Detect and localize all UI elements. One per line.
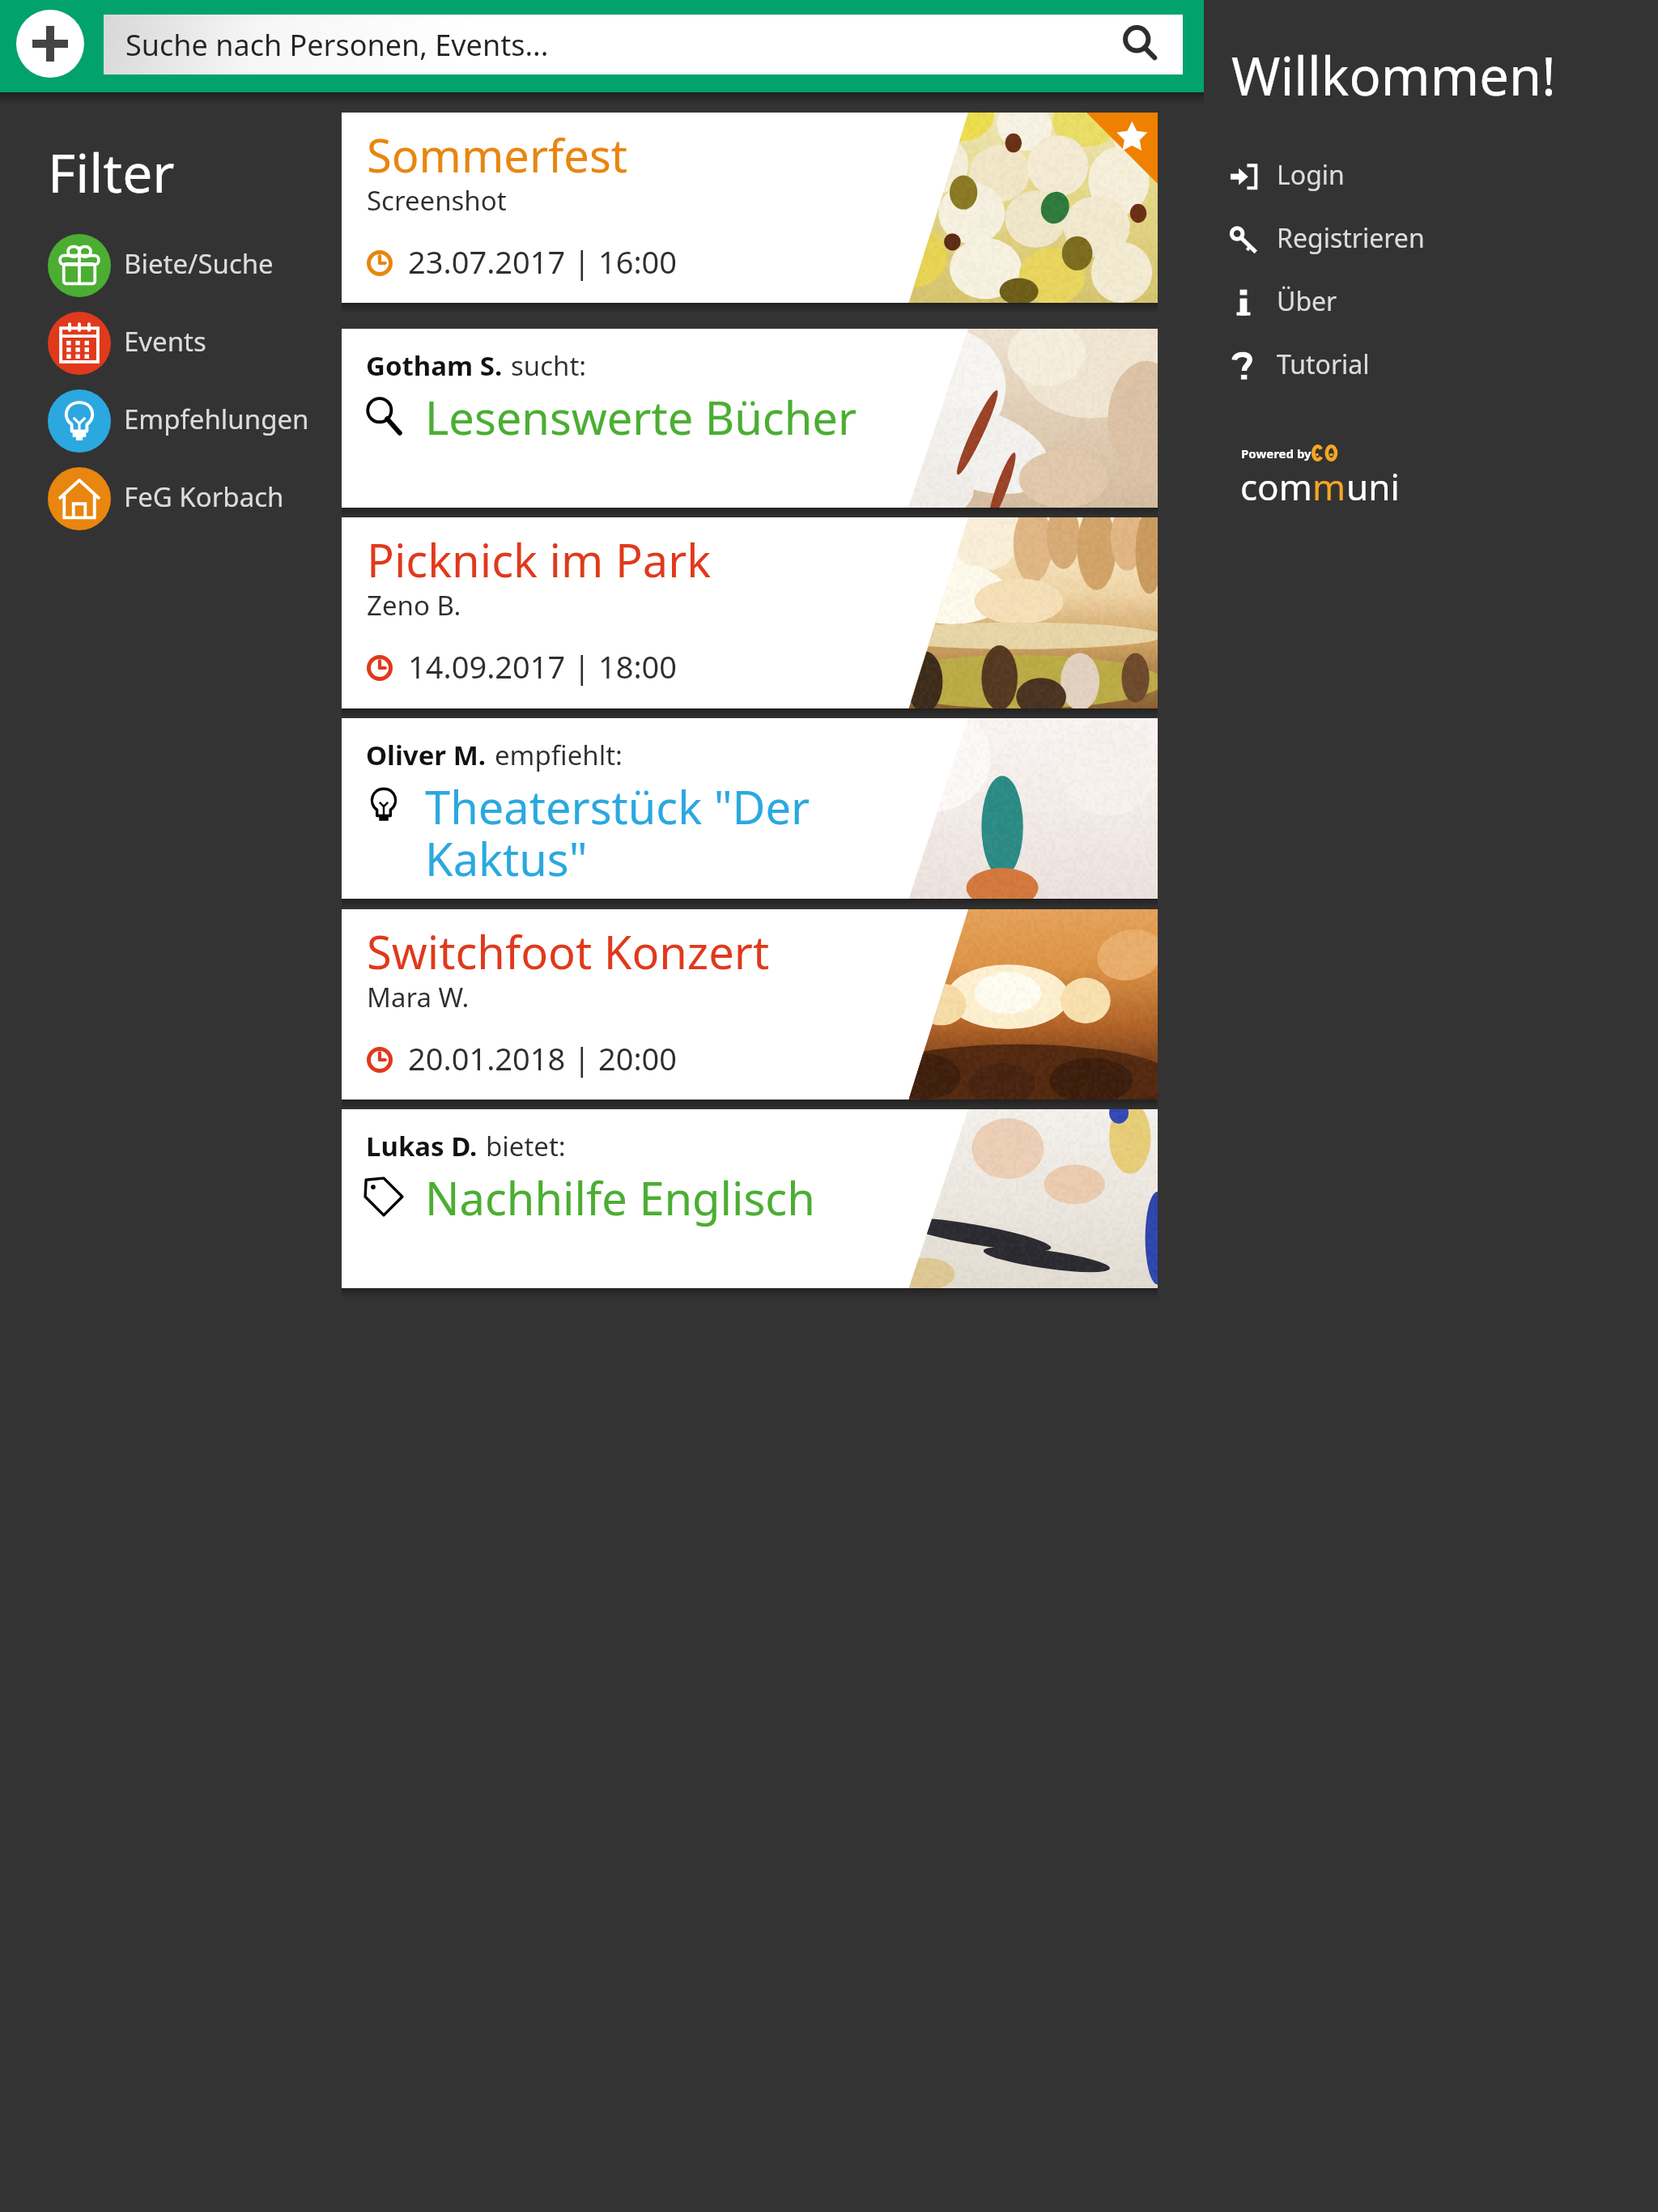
staticText: Gotham S. bbox=[366, 347, 503, 384]
button[interactable]: Gotham S. bbox=[342, 329, 1158, 508]
staticText: Suche nach Personen, Events... bbox=[125, 25, 549, 65]
staticText: 14.09.2017 | 18:00 bbox=[408, 645, 678, 687]
staticText: Filter bbox=[48, 135, 175, 208]
button[interactable]: Biete/Suche bbox=[48, 234, 339, 297]
staticText: com bbox=[1240, 462, 1312, 511]
staticText: Lesenswerte Bücher bbox=[425, 386, 857, 448]
staticText: uni bbox=[1346, 462, 1400, 511]
button[interactable]: Tutorial bbox=[1231, 343, 1554, 389]
button[interactable]: Neuen Beitrag erstellen bbox=[16, 10, 84, 78]
button[interactable]: Login bbox=[1231, 154, 1554, 199]
staticText: 23.07.2017 | 16:00 bbox=[408, 240, 678, 283]
staticText: Powered by bbox=[1241, 445, 1312, 462]
staticText: Screenshot bbox=[367, 182, 507, 219]
staticText: Zeno B. bbox=[367, 587, 461, 623]
button[interactable]: FeG Korbach bbox=[48, 467, 339, 530]
staticText: Picknick im Park bbox=[367, 529, 712, 590]
button[interactable]: Lukas D. bbox=[342, 1109, 1158, 1288]
staticText: m bbox=[1312, 462, 1346, 511]
button[interactable]: Registrieren bbox=[1231, 217, 1554, 262]
button[interactable]: Oliver M. bbox=[342, 718, 1158, 899]
staticText: 20.01.2018 | 20:00 bbox=[408, 1037, 678, 1079]
staticText: Mara W. bbox=[367, 979, 470, 1015]
staticText: FeG Korbach bbox=[124, 479, 284, 515]
staticText: Login bbox=[1277, 157, 1345, 193]
button[interactable]: Über bbox=[1231, 280, 1554, 325]
staticText: Über bbox=[1277, 283, 1337, 319]
staticText: empfiehlt: bbox=[495, 737, 623, 773]
staticText: Nachhilfe Englisch bbox=[425, 1167, 815, 1228]
staticText: Registrieren bbox=[1277, 220, 1425, 256]
staticText: Tutorial bbox=[1277, 347, 1370, 382]
button[interactable]: Empfehlungen bbox=[48, 389, 339, 453]
staticText: Willkommen! bbox=[1231, 40, 1556, 112]
staticText: Events bbox=[124, 323, 206, 359]
button[interactable]: Suche nach Personen, Events... bbox=[104, 15, 1183, 74]
staticText: bietet: bbox=[486, 1128, 566, 1164]
button[interactable]: Suchen bbox=[1116, 20, 1165, 69]
staticText: Biete/Suche bbox=[124, 245, 274, 282]
staticText: sucht: bbox=[511, 347, 587, 384]
staticText: Switchfoot Konzert bbox=[367, 921, 770, 982]
staticText: Sommerfest bbox=[367, 124, 627, 185]
staticText: Oliver M. bbox=[366, 737, 487, 773]
staticText: Lukas D. bbox=[366, 1128, 478, 1164]
button[interactable]: Sommerfest bbox=[342, 113, 1158, 303]
staticText: Empfehlungen bbox=[124, 401, 309, 437]
button[interactable]: Events bbox=[48, 312, 339, 375]
button[interactable]: Picknick im Park bbox=[342, 517, 1158, 708]
button[interactable]: Switchfoot Konzert bbox=[342, 909, 1158, 1100]
staticText: Theaterstück "Der Kaktus" bbox=[425, 776, 810, 890]
